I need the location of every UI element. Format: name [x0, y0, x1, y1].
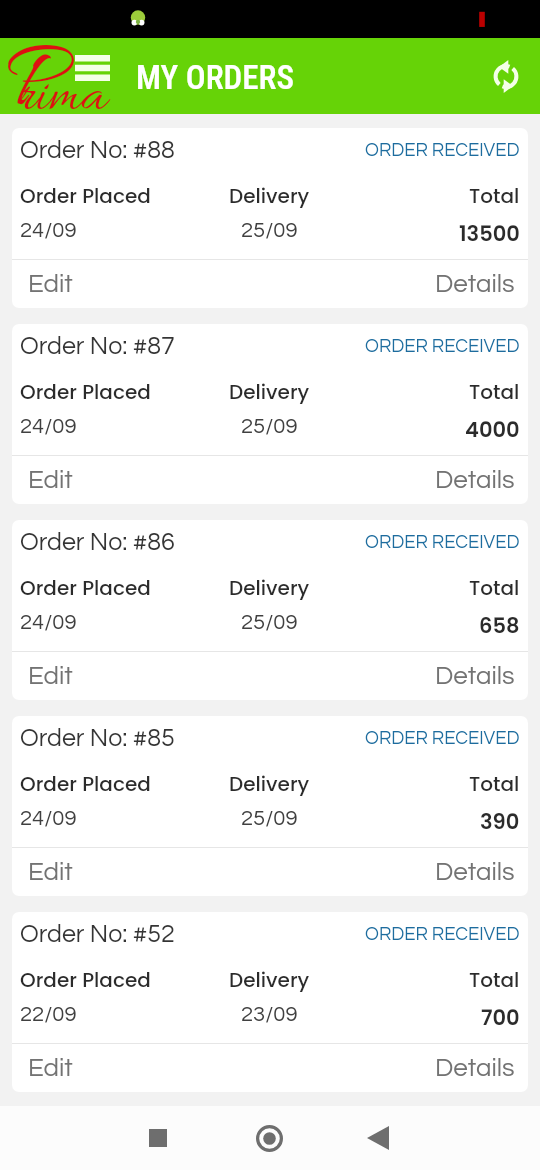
staticText: 24/09: [20, 219, 77, 242]
button[interactable]: Details: [270, 848, 528, 896]
staticText: Order Placed: [20, 966, 151, 994]
staticText: Delivery: [229, 966, 310, 994]
staticText: Delivery: [229, 378, 310, 406]
staticText: Total: [469, 770, 520, 798]
staticText: Order No: #52: [20, 921, 175, 947]
button[interactable]: Details: [270, 652, 528, 700]
staticText: ORDER RECEIVED: [365, 337, 520, 356]
button[interactable]: Order No: #88: [12, 128, 528, 308]
staticText: Details: [435, 663, 515, 690]
staticText: Order Placed: [20, 378, 151, 406]
button[interactable]: Edit: [12, 1044, 270, 1092]
staticText: Edit: [28, 271, 73, 298]
staticText: Total: [469, 378, 520, 406]
button[interactable]: Edit: [12, 456, 270, 504]
button[interactable]: Order No: #85: [12, 716, 528, 896]
button[interactable]: Back: [354, 1114, 402, 1162]
staticText: 700: [481, 1003, 520, 1032]
staticText: MY ORDERS: [136, 58, 294, 97]
staticText: Details: [435, 467, 515, 494]
staticText: Details: [435, 271, 515, 298]
staticText: 23/09: [241, 1003, 298, 1026]
button[interactable]: Open navigation menu: [70, 46, 114, 90]
staticText: Details: [435, 1055, 515, 1082]
staticText: Delivery: [229, 574, 310, 602]
staticText: Order Placed: [20, 574, 151, 602]
staticText: 658: [479, 611, 520, 640]
staticText: 13500: [459, 219, 520, 248]
staticText: Details: [435, 859, 515, 886]
staticText: 25/09: [241, 415, 298, 438]
staticText: 25/09: [241, 611, 298, 634]
button[interactable]: Edit: [12, 848, 270, 896]
button[interactable]: Details: [270, 260, 528, 308]
button[interactable]: Refresh orders: [482, 52, 530, 100]
staticText: ORDER RECEIVED: [365, 925, 520, 944]
staticText: Order No: #85: [20, 725, 175, 751]
staticText: 25/09: [241, 219, 298, 242]
staticText: 25/09: [241, 807, 298, 830]
staticText: Edit: [28, 467, 73, 494]
staticText: Edit: [28, 663, 73, 690]
staticText: Total: [469, 966, 520, 994]
staticText: 22/09: [20, 1003, 77, 1026]
staticText: Order Placed: [20, 182, 151, 210]
staticText: 24/09: [20, 611, 77, 634]
staticText: 24/09: [20, 807, 77, 830]
staticText: Total: [469, 574, 520, 602]
staticText: Delivery: [229, 770, 310, 798]
staticText: ORDER RECEIVED: [365, 141, 520, 160]
button[interactable]: Order No: #52: [12, 912, 528, 1092]
button[interactable]: Order No: #86: [12, 520, 528, 700]
button[interactable]: Recent apps: [134, 1114, 182, 1162]
staticText: 390: [480, 807, 520, 836]
button[interactable]: Home: [245, 1114, 293, 1162]
staticText: Edit: [28, 859, 73, 886]
staticText: 24/09: [20, 415, 77, 438]
staticText: Order No: #86: [20, 529, 175, 555]
button[interactable]: Order No: #87: [12, 324, 528, 504]
button[interactable]: Edit: [12, 260, 270, 308]
staticText: 4000: [465, 415, 520, 444]
button[interactable]: Details: [270, 1044, 528, 1092]
staticText: Total: [469, 182, 520, 210]
staticText: rima: [18, 63, 107, 133]
button[interactable]: Details: [270, 456, 528, 504]
button[interactable]: Edit: [12, 652, 270, 700]
staticText: Edit: [28, 1055, 73, 1082]
staticText: Order No: #88: [20, 137, 175, 163]
staticText: P: [5, 25, 57, 145]
staticText: Order No: #87: [20, 333, 175, 359]
staticText: Delivery: [229, 182, 310, 210]
staticText: ORDER RECEIVED: [365, 729, 520, 748]
staticText: ORDER RECEIVED: [365, 533, 520, 552]
staticText: Order Placed: [20, 770, 151, 798]
